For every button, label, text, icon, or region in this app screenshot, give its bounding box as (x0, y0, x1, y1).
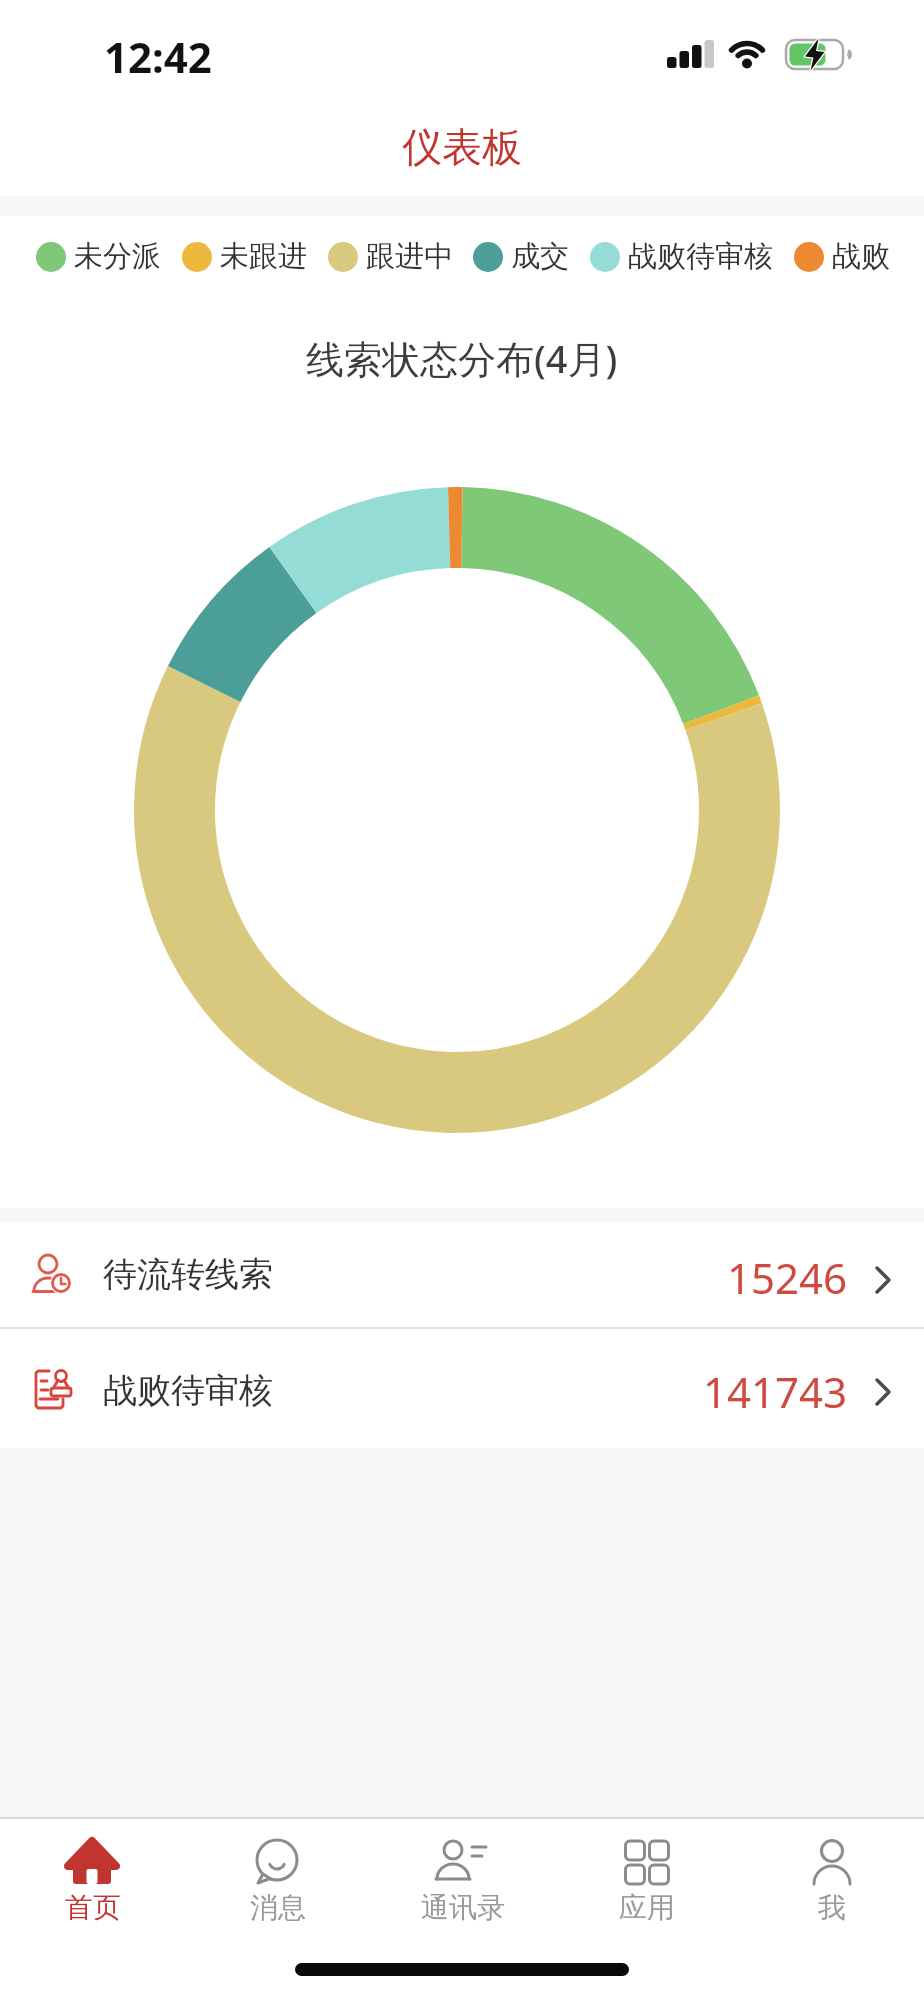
staticText: 战败待审核 (628, 238, 773, 275)
staticText: 战败待审核 (103, 1369, 273, 1412)
button[interactable]: 消息 (185, 1820, 370, 1940)
button[interactable]: 应用 (554, 1820, 739, 1940)
staticText: 未跟进 (220, 238, 307, 275)
staticText: 线索状态分布(4月) (306, 332, 618, 384)
staticText: 待流转线索 (103, 1253, 273, 1296)
staticText: 消息 (250, 1890, 306, 1925)
staticText: 成交 (511, 238, 569, 275)
staticText: 12:42 (104, 28, 212, 85)
button[interactable]: 通讯录 (370, 1820, 555, 1940)
button[interactable]: 我 (739, 1820, 924, 1940)
staticText: 我 (818, 1890, 846, 1925)
staticText: 未分派 (74, 238, 161, 275)
staticText: 应用 (619, 1890, 675, 1925)
staticText: 通讯录 (421, 1890, 505, 1925)
button[interactable]: 待流转线索 (0, 1222, 924, 1327)
staticText: 首页 (65, 1890, 121, 1925)
staticText: 15246 (727, 1249, 848, 1306)
button[interactable]: 首页 (0, 1820, 185, 1940)
staticText: 仪表板 (402, 122, 522, 172)
button[interactable]: 战败待审核 (0, 1329, 924, 1448)
staticText: 141743 (703, 1363, 848, 1420)
staticText: 战败 (832, 238, 890, 275)
staticText: 跟进中 (366, 238, 453, 275)
